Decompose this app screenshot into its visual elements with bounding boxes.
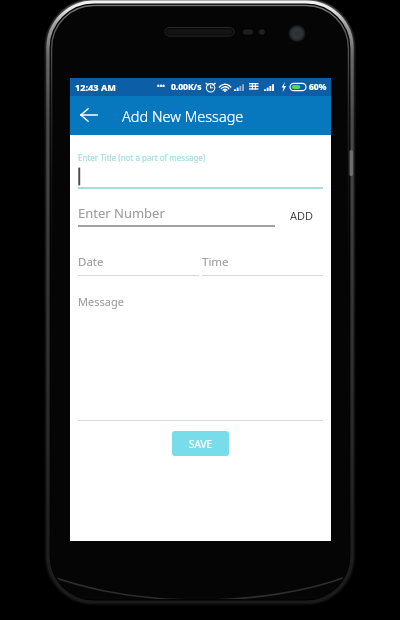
button[interactable]: Date xyxy=(78,254,199,276)
staticText: Date xyxy=(78,254,104,270)
button[interactable]: Back xyxy=(74,101,104,131)
button[interactable]: Enter Number xyxy=(78,203,275,227)
staticText: Add New Message xyxy=(122,106,244,126)
button[interactable]: SAVE xyxy=(172,431,229,456)
staticText: 12:43 AM xyxy=(75,81,117,94)
staticText: SAVE xyxy=(189,437,213,451)
staticText: Time xyxy=(202,254,229,270)
button[interactable]: Message xyxy=(78,294,323,421)
staticText: ••• xyxy=(157,82,165,92)
button[interactable]: ADD xyxy=(281,203,323,227)
button[interactable] xyxy=(78,166,323,189)
staticText: ADD xyxy=(290,208,314,223)
button[interactable]: Time xyxy=(202,254,323,276)
staticText: Enter Title (not a part of message) xyxy=(78,152,206,163)
staticText: Message xyxy=(78,294,124,309)
staticText: 60% xyxy=(309,81,327,93)
staticText: 0.00K/s xyxy=(171,81,202,93)
staticText: Enter Number xyxy=(78,204,165,222)
